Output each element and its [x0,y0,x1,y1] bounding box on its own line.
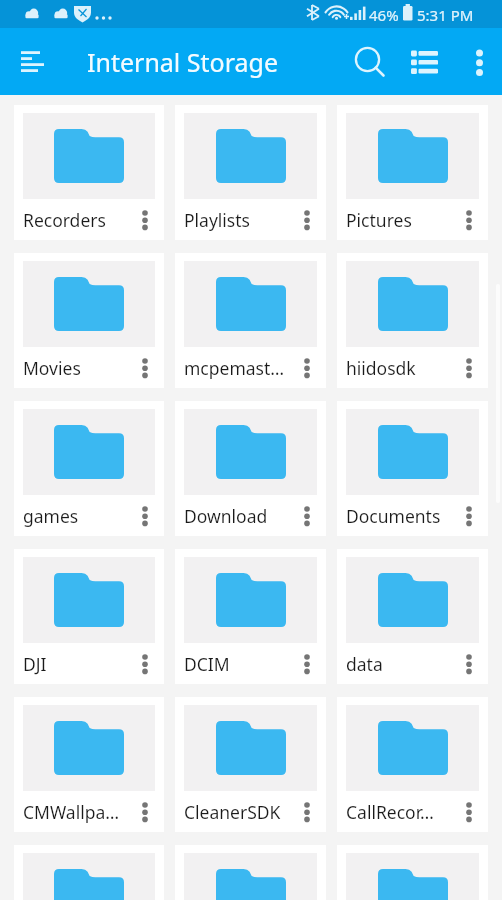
button[interactable]: More options for CallRecor… [456,795,482,829]
button[interactable]: DCIM [175,549,326,684]
button[interactable]: More options for mcpemast… [294,351,320,385]
staticText: games [23,504,132,528]
button[interactable]: Documents [337,401,488,536]
button[interactable]: hiidosdk [337,253,488,388]
button[interactable]: More options for DCIM [294,647,320,681]
staticText: CallRecor… [346,800,456,824]
button[interactable]: More options for Movies [132,351,158,385]
staticText: CMWallpa… [23,800,132,824]
button[interactable]: Recorders [14,105,164,240]
button[interactable]: More options for hiidosdk [456,351,482,385]
button[interactable]: More options for Playlists [294,203,320,237]
button[interactable]: CallRecor… [337,697,488,832]
staticText: 46% [369,5,399,25]
button[interactable]: games [14,401,164,536]
staticText: CleanerSDK [184,800,294,824]
button[interactable]: Pictures [337,105,488,240]
button[interactable]: CleanerSDK [175,697,326,832]
button[interactable]: More options for Pictures [456,203,482,237]
button[interactable]: Playlists [175,105,326,240]
staticText: DJI [23,652,132,676]
staticText: data [346,652,456,676]
button[interactable]: Movies [14,253,164,388]
button[interactable]: More options for [175,845,326,900]
staticText: Recorders [23,208,132,232]
staticText: Pictures [346,208,456,232]
staticText: Movies [23,356,132,380]
button[interactable]: More options for Download [294,499,320,533]
button[interactable]: More options [450,28,502,95]
staticText: hiidosdk [346,356,456,380]
button[interactable]: More options for [14,845,164,900]
button[interactable]: More options for data [456,647,482,681]
button[interactable]: More options for Documents [456,499,482,533]
button[interactable]: Download [175,401,326,536]
button[interactable]: Menu [0,28,66,95]
staticText: Internal Storage [87,45,279,79]
button[interactable]: More options for [337,845,488,900]
button[interactable]: List view [398,28,450,95]
staticText: 5:31 PM [417,5,474,25]
button[interactable]: More options for Recorders [132,203,158,237]
staticText: Download [184,504,294,528]
button[interactable]: mcpemast… [175,253,326,388]
button[interactable]: DJI [14,549,164,684]
button[interactable]: More options for CleanerSDK [294,795,320,829]
button[interactable]: Search [340,28,398,95]
staticText: mcpemast… [184,356,294,380]
staticText: Playlists [184,208,294,232]
button[interactable]: data [337,549,488,684]
button[interactable]: CMWallpa… [14,697,164,832]
button[interactable]: More options for games [132,499,158,533]
staticText: DCIM [184,652,294,676]
staticText: Documents [346,504,456,528]
button[interactable]: More options for DJI [132,647,158,681]
button[interactable]: More options for CMWallpa… [132,795,158,829]
